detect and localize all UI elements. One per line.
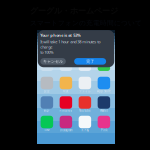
staticText: Wallet xyxy=(100,109,108,112)
staticText: 完了 xyxy=(86,59,94,64)
button[interactable]: YouTube xyxy=(75,96,94,112)
staticText: Pink xyxy=(101,128,107,132)
staticText: R Pay xyxy=(81,128,88,132)
button[interactable]: キャンセル xyxy=(40,58,66,65)
staticText: LINE xyxy=(44,128,49,132)
button[interactable]: Pink xyxy=(94,116,113,131)
button[interactable]: Instagram xyxy=(56,116,75,131)
button[interactable]: App Store xyxy=(94,77,113,92)
staticText: YouTube xyxy=(79,109,91,112)
staticText: to 100% xyxy=(40,50,53,55)
staticText: キャンセル xyxy=(43,59,63,64)
staticText: 時計 xyxy=(44,109,50,112)
button[interactable]: 設定 xyxy=(37,77,56,92)
staticText: Your phone is at 53% xyxy=(40,32,81,38)
staticText: It will take 1 hour and 38 minutes to ch… xyxy=(40,39,100,49)
button[interactable]: Pinterest xyxy=(56,96,75,112)
staticText: Pinterest xyxy=(59,109,72,112)
staticText: 写真 xyxy=(63,90,69,93)
button[interactable]: 写真 xyxy=(56,77,75,92)
button[interactable]: LINE xyxy=(37,116,56,131)
button[interactable]: ファイル xyxy=(75,77,94,92)
button[interactable]: 完了 xyxy=(74,58,106,65)
staticText: スマートフォンの充電時間について xyxy=(30,19,142,27)
button[interactable]: R Pay xyxy=(75,116,94,131)
staticText: ファイル xyxy=(79,90,91,93)
staticText: App Store xyxy=(97,89,111,93)
staticText: 設定 xyxy=(44,90,50,93)
button[interactable]: 時計 xyxy=(37,96,56,112)
staticText: Instagram xyxy=(60,128,72,132)
button[interactable]: Wallet xyxy=(94,96,113,112)
